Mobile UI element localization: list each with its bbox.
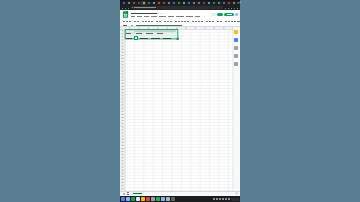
button[interactable]: Tab 20 bbox=[216, 1, 221, 5]
button[interactable]: Tab 21 bbox=[221, 1, 226, 5]
button[interactable]: Tab 1 bbox=[121, 1, 126, 5]
button[interactable]: Format tool bbox=[144, 20, 147, 23]
button[interactable]: Format tool bbox=[224, 20, 227, 23]
button[interactable]: Tab 19 bbox=[211, 1, 216, 5]
button[interactable]: Share bbox=[224, 13, 234, 16]
button[interactable]: Tab 10 bbox=[166, 1, 171, 5]
button[interactable]: Side panel app bbox=[234, 54, 238, 58]
button[interactable]: Toolbar action 2 bbox=[227, 6, 230, 10]
button[interactable]: Tab 12 bbox=[176, 1, 181, 5]
button[interactable]: Tab 2 bbox=[126, 1, 131, 5]
button[interactable]: Tab 9 bbox=[161, 1, 166, 5]
button[interactable]: Tab 16 bbox=[196, 1, 201, 5]
button[interactable]: Format tool bbox=[163, 20, 166, 23]
button[interactable]: Format tool bbox=[194, 20, 197, 23]
button[interactable]: Tab 5 bbox=[141, 1, 146, 5]
button[interactable]: Format tool bbox=[191, 20, 194, 23]
button[interactable]: Tab 14 bbox=[186, 1, 191, 5]
button[interactable]: Back bbox=[121, 6, 124, 10]
button[interactable]: Format tool bbox=[205, 20, 208, 23]
button[interactable]: Side panel app bbox=[234, 46, 238, 50]
button[interactable]: Reload bbox=[127, 6, 130, 10]
button[interactable]: Tab 7 bbox=[151, 1, 156, 5]
button[interactable]: Format tool bbox=[133, 20, 136, 23]
button[interactable]: Present bbox=[211, 13, 216, 16]
button[interactable]: Sheet1 tab bbox=[133, 192, 142, 195]
button[interactable]: Taskbar item 3 bbox=[131, 197, 135, 201]
button[interactable]: Format tool bbox=[125, 20, 128, 23]
button[interactable]: Taskbar item 7 bbox=[151, 197, 155, 201]
button[interactable]: Format tool bbox=[216, 20, 219, 23]
button[interactable]: Tab 15 bbox=[191, 1, 196, 5]
button[interactable]: Format tool bbox=[147, 20, 150, 23]
button[interactable]: Format tool bbox=[236, 20, 239, 23]
button[interactable]: Address bar bbox=[131, 6, 223, 9]
button[interactable]: Taskbar item 10 bbox=[166, 197, 170, 201]
button[interactable]: Taskbar item 9 bbox=[161, 197, 165, 201]
button[interactable]: Format tool bbox=[186, 20, 189, 23]
button[interactable]: Taskbar item 2 bbox=[126, 197, 130, 201]
button[interactable]: Taskbar item 4 bbox=[136, 197, 140, 201]
button[interactable]: Explore bbox=[235, 192, 238, 195]
button[interactable]: Taskbar item 11 bbox=[171, 197, 175, 201]
button[interactable]: Format tool bbox=[177, 20, 180, 23]
button[interactable]: Google Sheets home bbox=[122, 11, 129, 18]
button[interactable]: Toolbar action 5 bbox=[236, 6, 239, 10]
button[interactable]: All sheets bbox=[126, 192, 129, 195]
button[interactable]: Sheet attachment bbox=[134, 36, 138, 40]
button[interactable]: Format tool bbox=[169, 20, 172, 23]
button[interactable]: Format tool bbox=[158, 20, 161, 23]
button[interactable]: Tab 11 bbox=[171, 1, 176, 5]
button[interactable]: Format tool bbox=[208, 20, 211, 23]
button[interactable]: Format tool bbox=[141, 20, 144, 23]
button[interactable]: Format tool bbox=[239, 20, 240, 23]
button[interactable]: Format tool bbox=[180, 20, 183, 23]
button[interactable]: Format tool bbox=[200, 20, 203, 23]
button[interactable]: Format tool bbox=[136, 20, 139, 23]
button[interactable]: Tab 18 bbox=[206, 1, 211, 5]
button[interactable]: Format tool bbox=[174, 20, 177, 23]
button[interactable]: Tab 17 bbox=[201, 1, 206, 5]
button[interactable]: Meet bbox=[217, 13, 223, 16]
button[interactable]: Forward bbox=[124, 6, 127, 10]
button[interactable]: Name box bbox=[120, 23, 129, 27]
button[interactable]: Format tool bbox=[211, 20, 214, 23]
button[interactable]: Tab 24 bbox=[236, 1, 240, 5]
button[interactable]: Format tool bbox=[128, 20, 131, 23]
button[interactable]: Toolbar action 1 bbox=[224, 6, 227, 10]
button[interactable]: Toolbar action 3 bbox=[230, 6, 233, 10]
button[interactable]: Tab 6 bbox=[146, 1, 151, 5]
button[interactable]: Format tool bbox=[227, 20, 230, 23]
button[interactable]: Taskbar item 8 bbox=[156, 197, 160, 201]
button[interactable]: Tab 22 bbox=[226, 1, 231, 5]
button[interactable]: Tab 13 bbox=[181, 1, 186, 5]
button[interactable]: Format tool bbox=[155, 20, 158, 23]
button[interactable]: Account bbox=[235, 13, 238, 16]
button[interactable]: Format tool bbox=[233, 20, 236, 23]
button[interactable]: Format tool bbox=[230, 20, 233, 23]
button[interactable]: Tab 3 bbox=[131, 1, 136, 5]
button[interactable]: Toolbar action 4 bbox=[233, 6, 236, 10]
button[interactable]: Tab 8 bbox=[156, 1, 161, 5]
button[interactable]: Taskbar item 6 bbox=[146, 197, 150, 201]
button[interactable]: Taskbar item 5 bbox=[141, 197, 145, 201]
button[interactable]: Tab 23 bbox=[231, 1, 236, 5]
button[interactable]: Format tool bbox=[122, 20, 125, 23]
button[interactable]: Tab 4 bbox=[136, 1, 141, 5]
button[interactable]: Format tool bbox=[197, 20, 200, 23]
button[interactable]: Add sheet bbox=[122, 192, 125, 195]
button[interactable]: Format tool bbox=[166, 20, 169, 23]
button[interactable]: Side panel app bbox=[234, 30, 238, 34]
button[interactable]: Taskbar item 1 bbox=[121, 197, 125, 201]
button[interactable]: Format tool bbox=[183, 20, 186, 23]
button[interactable]: Format tool bbox=[219, 20, 222, 23]
